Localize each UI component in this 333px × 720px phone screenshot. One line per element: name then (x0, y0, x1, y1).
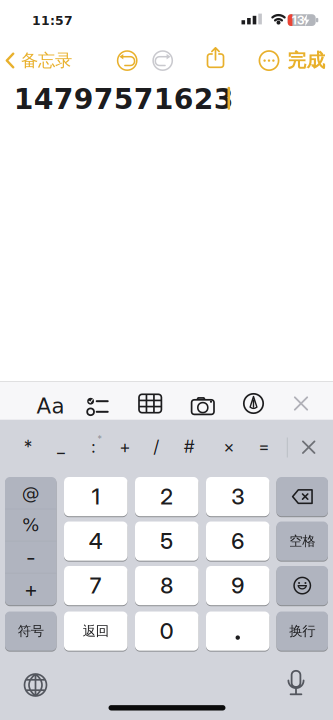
staticText: 14797571623 (14, 83, 234, 116)
button[interactable]: 空格 (276, 521, 328, 561)
button[interactable]: Redo (149, 47, 177, 75)
button[interactable]: More (255, 47, 283, 75)
button[interactable]: Emoji (276, 566, 328, 605)
staticText: 5 (160, 528, 173, 554)
staticText: 7 (90, 572, 102, 599)
staticText: _ (57, 436, 65, 457)
staticText: = (258, 436, 269, 457)
button[interactable]: : (78, 430, 108, 462)
staticText: + (24, 577, 37, 602)
staticText: / (153, 436, 159, 457)
staticText: + (119, 436, 130, 457)
staticText: × (223, 436, 234, 457)
button[interactable]: Delete (276, 477, 328, 516)
staticText: 完成 (287, 49, 325, 72)
staticText: @ (22, 483, 40, 503)
staticText: 3 (231, 483, 244, 510)
button[interactable]: 0 (135, 611, 198, 651)
button[interactable]: . (206, 611, 269, 651)
button[interactable]: 5 (135, 521, 198, 561)
button[interactable]: Camera (189, 393, 217, 419)
staticText: * (24, 436, 32, 457)
button[interactable]: + (110, 430, 140, 462)
button[interactable]: 9 (206, 566, 269, 605)
button[interactable]: Dictate (284, 669, 308, 699)
button[interactable]: 备忘录 (5, 43, 101, 77)
button[interactable]: Undo (113, 47, 141, 75)
staticText: : (91, 436, 95, 457)
staticText: 0 (160, 618, 174, 644)
staticText: 13 (292, 13, 304, 27)
button[interactable]: 完成 (284, 43, 328, 77)
button[interactable]: 2 (135, 477, 198, 516)
staticText: Aa (36, 394, 64, 418)
staticText: 符号 (18, 623, 44, 639)
button[interactable]: 换行 (276, 611, 328, 651)
button[interactable]: Table (137, 390, 163, 416)
staticText: 11:57 (32, 13, 73, 28)
staticText: 9 (231, 572, 244, 599)
button[interactable]: % (5, 509, 56, 541)
button[interactable]: Hide symbols (294, 432, 324, 462)
button[interactable]: 4 (64, 521, 127, 561)
staticText: # (184, 436, 194, 457)
button[interactable]: Checklist (85, 393, 111, 419)
staticText: 返回 (83, 623, 109, 639)
staticText: 4 (89, 528, 103, 554)
button[interactable]: / (141, 430, 171, 462)
staticText: 8 (160, 572, 173, 599)
staticText: * (97, 433, 101, 444)
button[interactable]: 3 (206, 477, 269, 516)
staticText: 换行 (289, 623, 315, 639)
button[interactable]: - (5, 541, 56, 573)
staticText: 6 (231, 528, 244, 554)
button[interactable]: 符号 (5, 611, 56, 651)
button[interactable]: 6 (206, 521, 269, 561)
button[interactable]: Format (32, 389, 68, 423)
staticText: 2 (160, 483, 173, 510)
button[interactable]: Dismiss keyboard (288, 390, 314, 416)
button[interactable]: Share (202, 45, 228, 73)
button[interactable]: # (174, 430, 204, 462)
button[interactable]: + (5, 573, 56, 605)
button[interactable]: 8 (135, 566, 198, 605)
staticText: 空格 (289, 533, 315, 549)
staticText: 1 (92, 483, 100, 510)
button[interactable]: = (249, 430, 279, 462)
button[interactable]: @ (5, 477, 56, 509)
staticText: % (22, 515, 39, 535)
button[interactable]: * (13, 430, 43, 462)
button[interactable]: Markup (240, 390, 266, 416)
button[interactable]: _ (46, 430, 76, 462)
staticText: - (26, 544, 35, 570)
button[interactable]: 7 (64, 566, 127, 605)
staticText: 备忘录 (21, 50, 72, 71)
button[interactable]: 返回 (64, 611, 127, 651)
button[interactable]: Next keyboard (20, 670, 50, 700)
button[interactable]: × (214, 430, 244, 462)
button[interactable]: 1 (64, 477, 127, 516)
